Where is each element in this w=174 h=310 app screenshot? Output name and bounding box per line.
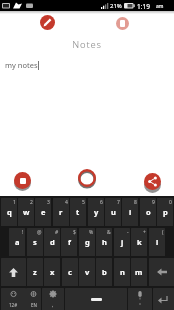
- staticText: 4: [65, 199, 68, 206]
- button[interactable]: w: [18, 198, 34, 226]
- staticText: f: [68, 237, 71, 247]
- staticText: $: [73, 229, 76, 236]
- staticText: r: [59, 207, 63, 217]
- staticText: v: [85, 267, 90, 277]
- staticText: y: [94, 207, 99, 217]
- staticText: 2: [30, 199, 33, 206]
- staticText: q: [7, 207, 12, 217]
- staticText: n: [120, 267, 125, 277]
- staticText: l: [156, 237, 159, 247]
- staticText: w: [23, 207, 30, 217]
- staticText: m: [135, 267, 143, 277]
- staticText: 9: [152, 199, 155, 206]
- staticText: j: [121, 237, 124, 247]
- staticText: ,: [52, 302, 54, 309]
- staticText: #: [55, 229, 59, 236]
- button[interactable]: g: [79, 228, 95, 256]
- staticText: @: [37, 229, 42, 236]
- button[interactable]: e: [35, 198, 51, 226]
- button[interactable]: y: [88, 198, 104, 226]
- button[interactable]: x: [44, 258, 60, 286]
- staticText: 12#: [9, 302, 18, 308]
- button[interactable]: d: [44, 228, 60, 256]
- staticText: my notes: [5, 60, 38, 70]
- staticText: s: [33, 237, 37, 247]
- button[interactable]: m: [131, 258, 147, 286]
- button[interactable]: 12#: [1, 288, 26, 310]
- button[interactable]: f: [61, 228, 77, 256]
- button[interactable]: q: [1, 198, 17, 226]
- button[interactable]: p: [157, 198, 173, 226]
- button[interactable]: a: [9, 228, 25, 256]
- staticText: 8: [134, 199, 137, 206]
- staticText: g: [85, 237, 90, 247]
- staticText: p: [163, 207, 168, 217]
- button[interactable]: EN: [26, 288, 41, 310]
- button[interactable]: i: [122, 198, 138, 226]
- staticText: %: [89, 229, 94, 236]
- staticText: d: [50, 237, 55, 247]
- staticText: 21%: [110, 2, 122, 10]
- button[interactable]: n: [114, 258, 130, 286]
- button[interactable]: [153, 288, 174, 310]
- staticText: !: [22, 229, 24, 236]
- staticText: &: [107, 229, 111, 236]
- button[interactable]: [116, 17, 129, 30]
- button[interactable]: o: [140, 198, 156, 226]
- staticText: -: [127, 229, 129, 236]
- button[interactable]: [1, 258, 26, 286]
- staticText: 1: [13, 199, 16, 206]
- staticText: am: [156, 3, 164, 10]
- button[interactable]: ,: [42, 288, 64, 310]
- button[interactable]: v: [79, 258, 95, 286]
- staticText: i: [129, 207, 132, 217]
- button[interactable]: [40, 15, 55, 30]
- staticText: e: [41, 207, 46, 217]
- staticText: b: [102, 267, 107, 277]
- button[interactable]: b: [96, 258, 112, 286]
- staticText: +: [143, 229, 146, 236]
- staticText: x: [50, 267, 55, 277]
- staticText: o: [146, 207, 151, 217]
- staticText: c: [68, 267, 72, 277]
- staticText: h: [102, 237, 107, 247]
- staticText: t: [76, 207, 80, 217]
- button[interactable]: [65, 288, 127, 310]
- button[interactable]: [144, 173, 161, 190]
- staticText: a: [15, 237, 20, 247]
- button[interactable]: c: [62, 258, 78, 286]
- button[interactable]: r: [53, 198, 69, 226]
- staticText: 7: [117, 199, 120, 206]
- button[interactable]: j: [114, 228, 130, 256]
- button[interactable]: z: [27, 258, 43, 286]
- staticText: EN: [31, 302, 37, 308]
- staticText: Notes: [0, 38, 174, 51]
- button[interactable]: h: [96, 228, 112, 256]
- staticText: 6: [100, 199, 103, 206]
- staticText: 0: [169, 199, 172, 206]
- staticText: z: [33, 267, 37, 277]
- button[interactable]: u: [105, 198, 121, 226]
- button[interactable]: [149, 258, 174, 286]
- staticText: 3: [47, 199, 50, 206]
- staticText: k: [137, 237, 142, 247]
- button[interactable]: [77, 168, 97, 188]
- button[interactable]: s: [27, 228, 43, 256]
- staticText: u: [111, 207, 116, 217]
- button[interactable]: [128, 288, 152, 310]
- staticText: 1:19: [137, 2, 150, 11]
- button[interactable]: [14, 172, 31, 189]
- button[interactable]: t: [70, 198, 86, 226]
- staticText: (: [162, 229, 164, 236]
- staticText: 5: [82, 199, 85, 206]
- button[interactable]: l: [149, 228, 165, 256]
- button[interactable]: k: [131, 228, 147, 256]
